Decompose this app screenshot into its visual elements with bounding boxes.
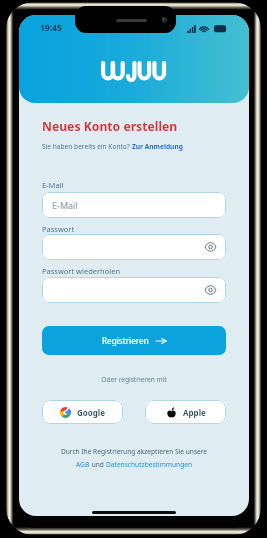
button[interactable]: Google <box>42 400 123 424</box>
staticText: Passwort <box>42 224 75 234</box>
other: Passwort anzeigen <box>205 243 216 251</box>
staticText: 19:45 <box>40 22 62 34</box>
staticText: Google <box>77 407 106 418</box>
staticText: Registrieren <box>102 335 149 346</box>
button[interactable]: Registrieren <box>42 326 226 355</box>
staticText: Oder registrieren mit <box>42 375 226 384</box>
button[interactable]: E-Mail <box>42 192 226 218</box>
button[interactable]: Sie haben bereits ein Konto? <box>42 142 183 151</box>
button[interactable]: Datenschutzbestimmungen <box>106 460 192 469</box>
staticText: und <box>90 460 106 469</box>
staticText: Zur Anmeldung <box>132 142 183 151</box>
staticText: E-Mail <box>52 199 78 211</box>
staticText: E-Mail <box>42 180 64 190</box>
button[interactable]: Apple <box>145 400 226 424</box>
staticText: Apple <box>183 407 206 418</box>
button[interactable]: Passwort anzeigen <box>42 277 226 303</box>
other: Passwort anzeigen <box>205 286 216 294</box>
button[interactable]: AGB <box>76 460 90 469</box>
staticText: Neues Konto erstellen <box>42 118 178 135</box>
button[interactable]: Passwort anzeigen <box>42 234 226 260</box>
staticText: Durch Ihe Registrierung akzeptieren Sie … <box>42 447 226 456</box>
staticText: Sie haben bereits ein Konto? <box>42 142 132 151</box>
staticText: Passwort wiederholen <box>42 266 121 276</box>
